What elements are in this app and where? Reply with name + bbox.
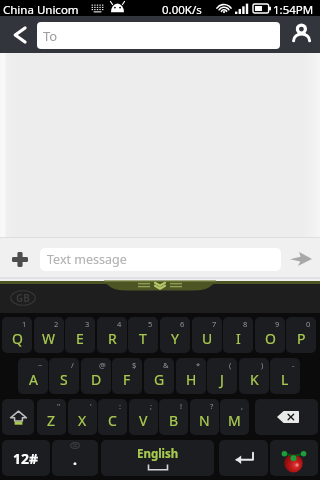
staticText: R bbox=[108, 329, 117, 348]
button[interactable]: 12# bbox=[2, 440, 50, 476]
button[interactable]: Z bbox=[37, 399, 66, 435]
staticText: F bbox=[123, 370, 131, 389]
button[interactable]: Text message bbox=[40, 248, 281, 271]
staticText: 1 bbox=[22, 319, 27, 329]
staticText: 2 bbox=[54, 319, 59, 329]
staticText: - bbox=[292, 360, 295, 370]
button[interactable]: H bbox=[176, 358, 206, 394]
button[interactable]: E bbox=[65, 317, 95, 353]
staticText: 12# bbox=[13, 449, 39, 468]
button[interactable]: U bbox=[192, 317, 222, 353]
button[interactable]: K bbox=[239, 358, 269, 394]
button[interactable]: V bbox=[129, 399, 158, 435]
button[interactable]: W bbox=[34, 317, 64, 353]
staticText: ! bbox=[180, 401, 183, 411]
button[interactable]: . bbox=[52, 440, 98, 476]
staticText: 7 bbox=[212, 319, 217, 329]
button[interactable]: Y bbox=[160, 317, 190, 353]
staticText: 3 bbox=[85, 319, 90, 329]
staticText: E bbox=[76, 329, 84, 348]
button[interactable]: Add attachment bbox=[2, 241, 38, 277]
staticText: T bbox=[139, 329, 147, 348]
staticText: 0 bbox=[306, 319, 311, 329]
staticText: @ bbox=[99, 360, 106, 370]
staticText: N bbox=[199, 411, 210, 430]
staticText: X bbox=[78, 411, 87, 430]
button[interactable]: O bbox=[255, 317, 285, 353]
staticText: ; bbox=[150, 401, 153, 411]
button[interactable]: S bbox=[49, 358, 79, 394]
staticText: L bbox=[281, 370, 289, 389]
staticText: : bbox=[119, 401, 122, 411]
staticText: Q bbox=[12, 329, 23, 348]
staticText: To bbox=[43, 27, 58, 45]
staticText: H bbox=[186, 370, 197, 389]
button[interactable]: F bbox=[112, 358, 142, 394]
staticText: ( bbox=[229, 360, 232, 370]
staticText: C bbox=[108, 411, 117, 430]
button[interactable]: A bbox=[18, 358, 48, 394]
staticText: 5 bbox=[148, 319, 153, 329]
staticText: 0.00K/s bbox=[162, 2, 202, 18]
button[interactable]: M bbox=[220, 399, 249, 435]
button[interactable]: R bbox=[97, 317, 127, 353]
button[interactable]: L bbox=[270, 358, 300, 394]
staticText: M bbox=[228, 411, 241, 430]
staticText: V bbox=[139, 411, 148, 430]
staticText: 9 bbox=[275, 319, 280, 329]
staticText: 6 bbox=[180, 319, 185, 329]
staticText: 1:54PM bbox=[273, 2, 314, 18]
button[interactable]: Back bbox=[0, 16, 37, 53]
button[interactable]: I bbox=[223, 317, 253, 353]
button[interactable]: B bbox=[159, 399, 188, 435]
button[interactable]: Backspace bbox=[255, 399, 318, 435]
button[interactable]: X bbox=[68, 399, 97, 435]
button[interactable]: English bbox=[101, 440, 214, 476]
staticText: O bbox=[265, 329, 276, 348]
staticText: W bbox=[42, 329, 56, 348]
button[interactable]: Contacts bbox=[284, 16, 318, 53]
staticText: I bbox=[236, 329, 241, 348]
button[interactable]: Send bbox=[285, 241, 317, 277]
staticText: GB bbox=[16, 291, 30, 305]
button[interactable]: D bbox=[81, 358, 111, 394]
button[interactable]: G bbox=[144, 358, 174, 394]
staticText: ) bbox=[261, 360, 264, 370]
staticText: English bbox=[137, 446, 179, 462]
button[interactable]: Emoji bbox=[270, 440, 318, 476]
staticText: China Unicom bbox=[3, 2, 79, 18]
staticText: U bbox=[202, 329, 213, 348]
button[interactable]: To bbox=[37, 22, 280, 49]
staticText: ' bbox=[90, 401, 92, 411]
staticText: . bbox=[73, 450, 77, 469]
staticText: G bbox=[154, 370, 165, 389]
staticText: ~ bbox=[38, 360, 43, 370]
button[interactable]: Q bbox=[2, 317, 32, 353]
button[interactable]: Input language GB bbox=[10, 290, 36, 306]
staticText: S bbox=[60, 370, 68, 389]
staticText: B bbox=[169, 411, 179, 430]
staticText: / bbox=[71, 360, 74, 370]
staticText: * bbox=[196, 360, 201, 370]
button[interactable]: C bbox=[98, 399, 127, 435]
staticText: A bbox=[29, 370, 38, 389]
button[interactable]: Hide keyboard bbox=[0, 279, 320, 293]
button[interactable]: N bbox=[190, 399, 219, 435]
staticText: P bbox=[297, 329, 306, 348]
staticText: " bbox=[57, 401, 61, 411]
staticText: 4 bbox=[117, 319, 122, 329]
staticText: J bbox=[220, 370, 224, 389]
button[interactable]: Enter bbox=[219, 440, 268, 476]
staticText: , bbox=[241, 401, 244, 411]
staticText: Text message bbox=[47, 251, 127, 268]
staticText: Y bbox=[171, 329, 179, 348]
button[interactable]: Shift bbox=[2, 399, 34, 435]
staticText: & bbox=[163, 360, 169, 370]
staticText: D bbox=[91, 370, 102, 389]
button[interactable]: T bbox=[128, 317, 158, 353]
staticText: 8 bbox=[243, 319, 248, 329]
button[interactable]: J bbox=[207, 358, 237, 394]
button[interactable]: P bbox=[286, 317, 316, 353]
staticText: Z bbox=[47, 411, 56, 430]
staticText: ? bbox=[210, 401, 214, 411]
